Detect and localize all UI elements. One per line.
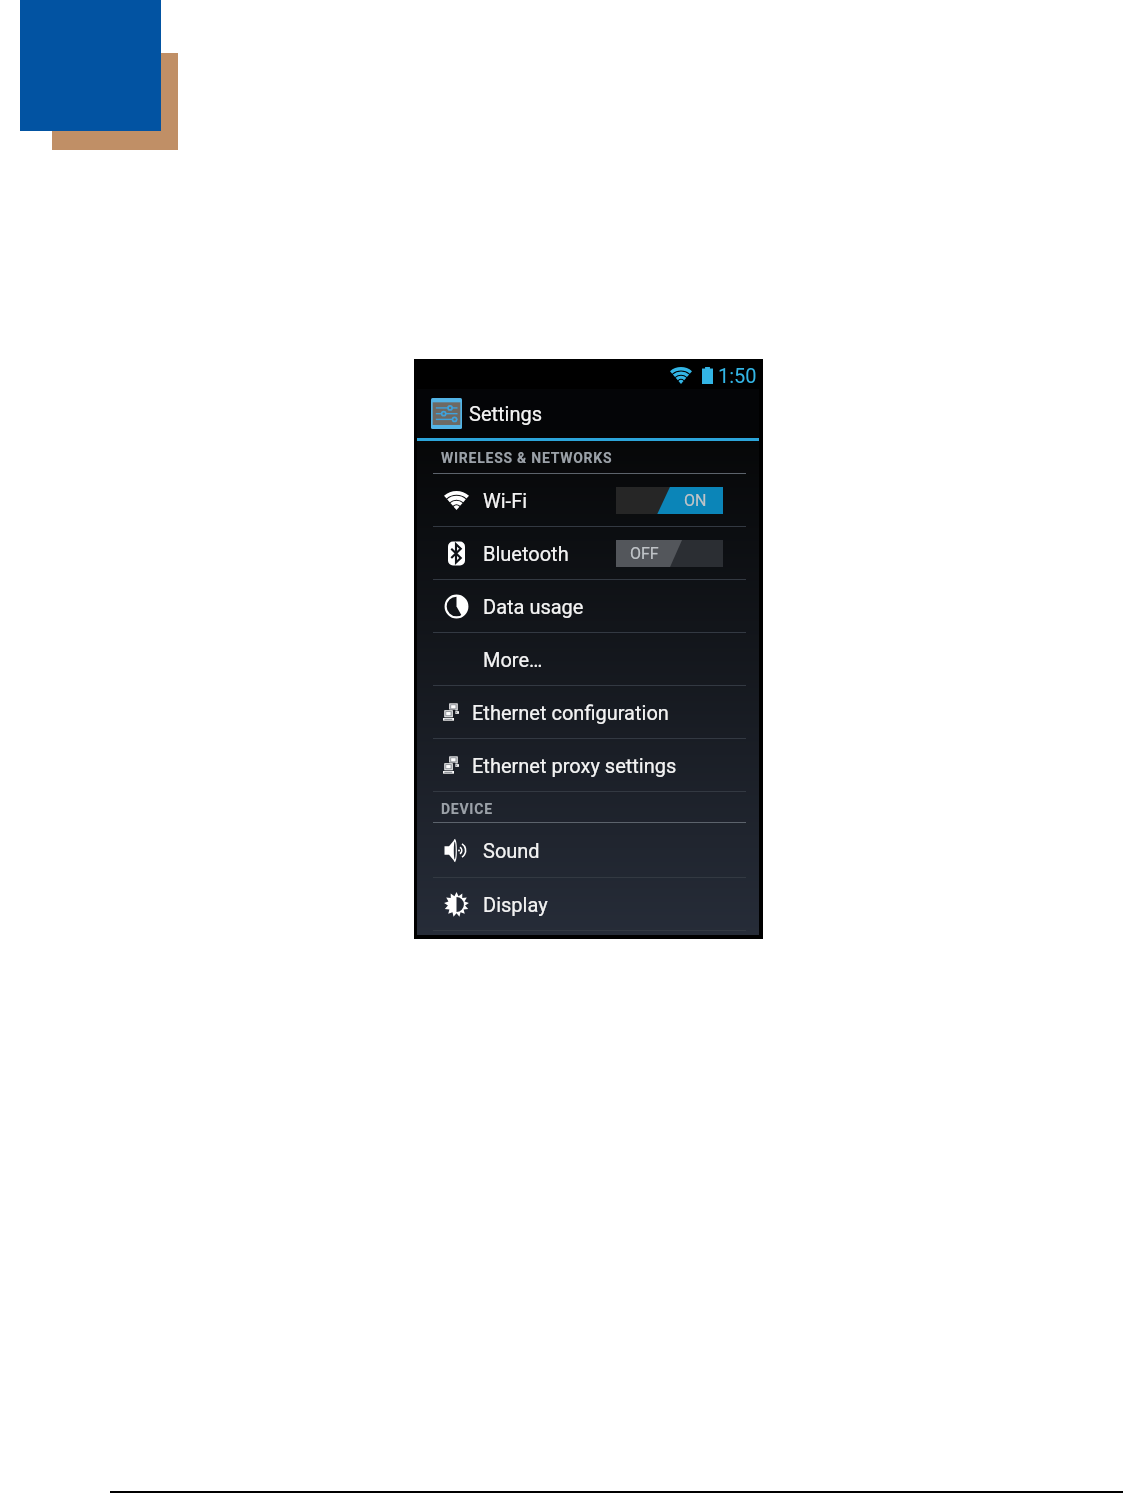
- staticText: Data usage: [483, 595, 584, 618]
- staticText: Ethernet proxy settings: [472, 754, 677, 777]
- button[interactable]: Wi-Fi on: [616, 487, 723, 514]
- button[interactable]: Ethernet proxy settings: [417, 739, 759, 792]
- staticText: Display: [483, 893, 548, 916]
- button[interactable]: Bluetooth: [417, 527, 759, 580]
- button[interactable]: Data usage: [417, 580, 759, 633]
- staticText: Ethernet configuration: [472, 701, 669, 724]
- button[interactable]: Bluetooth off: [616, 540, 723, 567]
- staticText: DEVICE: [441, 801, 493, 817]
- staticText: More…: [483, 648, 543, 671]
- staticText: WIRELESS & NETWORKS: [441, 450, 613, 466]
- button[interactable]: Ethernet configuration: [417, 686, 759, 739]
- staticText: 1:50: [718, 364, 757, 387]
- staticText: Sound: [483, 839, 540, 862]
- staticText: Wi-Fi: [483, 489, 528, 512]
- staticText: Settings: [469, 402, 543, 425]
- other: Settings: [431, 398, 462, 429]
- button[interactable]: More…: [417, 633, 759, 686]
- button[interactable]: Display: [417, 878, 759, 931]
- button[interactable]: Wi-Fi: [417, 474, 759, 527]
- staticText: Bluetooth: [483, 542, 569, 565]
- other: Battery full: [702, 367, 713, 384]
- button[interactable]: Sound: [417, 823, 759, 878]
- button[interactable]: Settings: [417, 389, 759, 438]
- other: Wi-Fi signal: [670, 367, 692, 384]
- staticText: OFF: [630, 544, 659, 563]
- staticText: ON: [684, 491, 707, 510]
